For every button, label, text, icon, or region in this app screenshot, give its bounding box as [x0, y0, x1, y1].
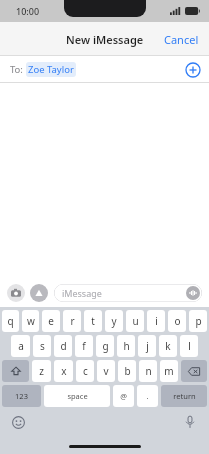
staticText: 123 — [15, 391, 28, 401]
button[interactable]: i — [147, 310, 165, 332]
button[interactable]: x — [54, 360, 73, 382]
staticText: To: — [10, 63, 26, 76]
button[interactable]: m — [160, 360, 178, 382]
button[interactable]: Add contact — [185, 62, 201, 78]
button[interactable]: v — [97, 360, 115, 382]
staticText: iMessage — [62, 287, 102, 299]
button[interactable]: s — [33, 335, 51, 357]
staticText: w — [27, 314, 35, 328]
button[interactable]: Dictate — [183, 415, 197, 429]
button[interactable]: l — [180, 335, 198, 357]
button[interactable]: k — [159, 335, 177, 357]
staticText: c — [83, 364, 88, 378]
staticText: New iMessage — [66, 32, 144, 47]
staticText: @ — [120, 391, 127, 401]
button[interactable]: g — [96, 335, 114, 357]
button[interactable]: z — [32, 360, 51, 382]
button[interactable]: Backspace — [181, 360, 207, 382]
button[interactable]: iMessage — [54, 284, 202, 302]
staticText: g — [102, 339, 109, 353]
button[interactable]: t — [84, 310, 102, 332]
staticText: q — [7, 314, 14, 328]
staticText: v — [103, 364, 109, 378]
button[interactable]: App Store — [30, 284, 48, 302]
button[interactable]: o — [168, 310, 186, 332]
button[interactable]: j — [138, 335, 156, 357]
button[interactable]: q — [2, 310, 19, 332]
staticText: j — [146, 339, 149, 353]
staticText: k — [165, 339, 171, 353]
staticText: r — [70, 314, 75, 328]
button[interactable]: Shift — [2, 360, 29, 382]
staticText: 10:00 — [16, 5, 40, 17]
button[interactable]: Zoe Taylor — [26, 62, 76, 77]
staticText: d — [60, 339, 67, 353]
button[interactable]: @ — [113, 385, 134, 407]
staticText: i — [155, 314, 158, 328]
staticText: space — [67, 391, 88, 401]
button[interactable]: r — [63, 310, 81, 332]
staticText: x — [61, 364, 67, 378]
staticText: . — [146, 391, 149, 401]
button[interactable]: d — [54, 335, 72, 357]
button[interactable]: n — [139, 360, 157, 382]
staticText: f — [82, 339, 86, 353]
staticText: return — [173, 391, 196, 401]
button[interactable]: c — [76, 360, 94, 382]
button[interactable]: y — [105, 310, 123, 332]
button[interactable]: p — [189, 310, 207, 332]
button[interactable]: w — [22, 310, 39, 332]
button[interactable]: h — [117, 335, 135, 357]
button[interactable]: u — [126, 310, 144, 332]
button[interactable]: b — [118, 360, 136, 382]
staticText: m — [164, 364, 174, 378]
staticText: h — [123, 339, 130, 353]
button[interactable]: Emoji — [12, 416, 25, 429]
staticText: s — [40, 339, 45, 353]
button[interactable]: space — [44, 385, 110, 407]
staticText: b — [124, 364, 131, 378]
button[interactable]: a — [11, 335, 30, 357]
staticText: o — [174, 314, 181, 328]
button[interactable]: e — [42, 310, 60, 332]
staticText: a — [18, 339, 24, 353]
button[interactable]: Camera — [7, 284, 25, 302]
button[interactable]: f — [75, 335, 93, 357]
button[interactable]: return — [161, 385, 207, 407]
staticText: n — [145, 364, 152, 378]
staticText: e — [48, 314, 54, 328]
staticText: l — [188, 339, 191, 353]
staticText: Cancel — [164, 32, 199, 47]
button[interactable]: Audio message — [186, 286, 200, 300]
staticText: u — [132, 314, 139, 328]
staticText: y — [111, 314, 117, 328]
staticText: t — [91, 314, 95, 328]
staticText: Zoe Taylor — [28, 63, 74, 76]
button[interactable]: 123 — [2, 385, 41, 407]
button[interactable]: Cancel — [154, 26, 209, 53]
button[interactable]: . — [137, 385, 158, 407]
staticText: z — [39, 364, 44, 378]
staticText: p — [195, 314, 202, 328]
